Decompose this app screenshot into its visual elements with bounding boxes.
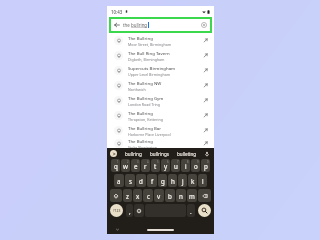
staticText: y <box>164 162 168 170</box>
staticText: m <box>189 192 195 200</box>
staticText: bullring <box>125 151 142 157</box>
button[interactable]: Back <box>111 19 210 31</box>
button[interactable]: Insert query <box>203 83 208 88</box>
button[interactable]: y <box>161 159 170 172</box>
button[interactable]: e <box>131 159 140 172</box>
button[interactable]: w <box>121 159 130 172</box>
staticText: 0 <box>207 160 209 164</box>
staticText: 2 <box>127 160 129 164</box>
button[interactable]: h <box>168 174 177 187</box>
staticText: 4 <box>147 160 149 164</box>
staticText: Supercuts Birmingham <box>128 65 176 71</box>
button[interactable]: f <box>147 174 157 187</box>
button[interactable]: k <box>188 174 197 187</box>
staticText: p <box>204 162 208 170</box>
staticText: o <box>194 162 198 170</box>
button[interactable]: Insert query <box>203 53 208 58</box>
button[interactable]: The Bullring <box>107 33 214 48</box>
staticText: u <box>174 162 178 170</box>
staticText: 8 <box>187 160 189 164</box>
staticText: The Bull Ring Tavern <box>128 50 170 56</box>
staticText: bulleting <box>177 151 197 157</box>
staticText: q <box>114 162 118 170</box>
button[interactable]: Insert query <box>203 141 208 146</box>
button[interactable]: u <box>171 159 180 172</box>
button[interactable]: ?123 <box>110 204 123 217</box>
button[interactable]: Supercuts Birmingham <box>107 63 214 78</box>
staticText: r <box>144 162 147 170</box>
button[interactable]: Expand suggestions <box>110 150 117 157</box>
button[interactable]: The Bullring Gym <box>107 93 214 108</box>
button[interactable]: n <box>176 189 186 202</box>
button[interactable]: The Bullring <box>107 138 214 148</box>
button[interactable]: l <box>198 174 207 187</box>
button[interactable]: m <box>187 189 197 202</box>
button[interactable]: v <box>154 189 164 202</box>
staticText: t <box>154 162 157 170</box>
button[interactable]: a <box>114 174 124 187</box>
staticText: 10:43 <box>111 9 123 15</box>
staticText: , <box>129 207 131 215</box>
button[interactable]: t <box>151 159 160 172</box>
button[interactable]: The Bullring NW <box>107 78 214 93</box>
button[interactable]: Insert query <box>203 98 208 103</box>
staticText: the <box>123 22 131 28</box>
other: Back <box>114 22 120 28</box>
button[interactable]: j <box>178 174 187 187</box>
staticText: . <box>190 207 192 215</box>
staticText: d <box>139 177 143 185</box>
button[interactable]: Shift <box>110 189 122 202</box>
staticText: i <box>185 162 187 170</box>
button[interactable]: Voice input <box>204 151 210 157</box>
button[interactable]: p <box>201 159 210 172</box>
staticText: The Bullring <box>128 138 153 144</box>
staticText: x <box>136 192 140 200</box>
button[interactable]: Clear search <box>201 22 207 28</box>
staticText: g <box>161 177 165 185</box>
button[interactable]: Insert query <box>203 38 208 43</box>
staticText: v <box>157 192 161 200</box>
button[interactable]: c <box>143 189 153 202</box>
button[interactable]: b <box>165 189 175 202</box>
staticText: Stoke Newington <box>128 145 157 148</box>
button[interactable]: , <box>126 204 133 217</box>
button[interactable]: The Bullring <box>107 108 214 123</box>
staticText: f <box>151 177 154 185</box>
button[interactable]: g <box>158 174 167 187</box>
staticText: b <box>168 192 172 200</box>
staticText: 9 <box>197 160 199 164</box>
staticText: Upper Level Birmingham <box>128 72 171 77</box>
staticText: j <box>182 177 184 185</box>
staticText: Thrapston, Kettering <box>128 117 163 122</box>
button[interactable]: Insert query <box>203 68 208 73</box>
button[interactable]: q <box>111 159 120 172</box>
button[interactable]: Insert query <box>203 113 208 118</box>
staticText: The Bullring <box>128 35 153 41</box>
button[interactable]: Search <box>198 204 211 217</box>
staticText: l <box>202 177 204 185</box>
staticText: 7 <box>177 160 179 164</box>
button[interactable]: Insert query <box>203 128 208 133</box>
button[interactable]: . <box>187 204 195 217</box>
staticText: 1 <box>117 160 119 164</box>
staticText: The Bullring Bar <box>128 125 162 131</box>
button[interactable]: The Bullring Bar <box>107 123 214 138</box>
button[interactable]: s <box>125 174 135 187</box>
staticText: s <box>129 177 132 185</box>
staticText: Digbeth, Birmingham <box>128 57 165 62</box>
button[interactable]: Backspace <box>198 189 211 202</box>
staticText: z <box>126 192 129 200</box>
staticText: w <box>123 162 128 170</box>
button[interactable]: x <box>133 189 142 202</box>
button[interactable]: r <box>141 159 150 172</box>
button[interactable]: Emoji <box>134 204 144 217</box>
button[interactable]: o <box>191 159 200 172</box>
button[interactable]: d <box>136 174 146 187</box>
button[interactable]: i <box>181 159 190 172</box>
staticText: London Road Tring <box>128 102 161 107</box>
button[interactable]: z <box>123 189 132 202</box>
staticText: e <box>134 162 138 170</box>
staticText: k <box>191 177 195 185</box>
button[interactable]: The Bull Ring Tavern <box>107 48 214 63</box>
